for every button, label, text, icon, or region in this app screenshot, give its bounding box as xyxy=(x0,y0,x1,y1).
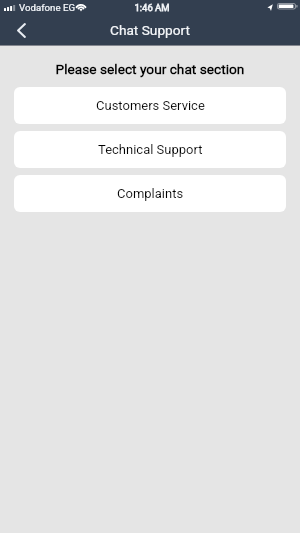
staticText: Customers Service xyxy=(96,98,205,113)
staticText: Please select your chat section xyxy=(0,61,300,77)
staticText: 1:46 AM xyxy=(2,2,300,13)
staticText: Chat Support xyxy=(0,22,300,38)
button[interactable]: Customers Service xyxy=(14,87,286,124)
button[interactable]: Technical Support xyxy=(14,131,286,168)
staticText: Vodafone EG xyxy=(19,2,76,13)
button[interactable]: Back xyxy=(8,16,38,44)
staticText: Complaints xyxy=(117,186,184,201)
button[interactable]: Complaints xyxy=(14,175,286,212)
staticText: Technical Support xyxy=(98,142,203,157)
